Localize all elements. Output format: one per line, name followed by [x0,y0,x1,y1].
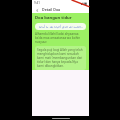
staticText: الحمد لله الذي أحيانا بعد ما أماتنا وإلي… [37,25,84,29]
staticText: Alhamdu lillahil ladzi ahyaanaa ba'da ma… [35,32,86,44]
button[interactable]: الحمد لله الذي أحيانا بعد ما أماتنا وإلي… [35,23,86,30]
button[interactable]: Back [34,7,40,13]
staticText: 9:41 [34,1,40,5]
staticText: Segala puji bagi Allah yang telah menghi… [37,48,84,68]
button[interactable]: Segala puji bagi Allah yang telah menghi… [35,46,86,70]
staticText: Detail Doa [42,7,61,12]
staticText: Doa bangun tidur [35,15,72,21]
